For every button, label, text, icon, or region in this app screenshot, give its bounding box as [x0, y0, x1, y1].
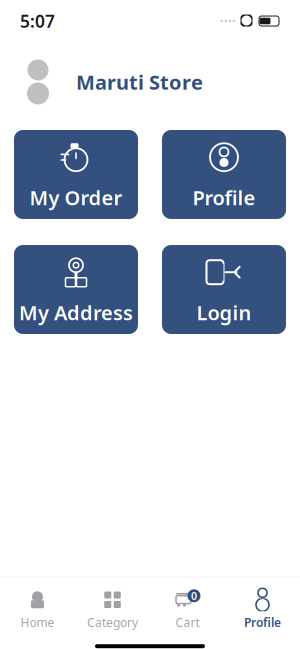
- staticText: Profile: [244, 614, 281, 630]
- staticText: My Address: [19, 299, 133, 326]
- staticText: Category: [87, 614, 138, 630]
- button[interactable]: Profile: [162, 130, 286, 219]
- button[interactable]: Home: [0, 584, 75, 636]
- staticText: Cart: [175, 614, 199, 630]
- button[interactable]: My Order: [14, 130, 138, 219]
- staticText: Home: [20, 614, 54, 630]
- button[interactable]: Category: [75, 584, 150, 636]
- staticText: Maruti Store: [76, 69, 203, 95]
- staticText: Login: [196, 299, 251, 326]
- button[interactable]: Login: [162, 245, 286, 334]
- button[interactable]: My Address: [14, 245, 138, 334]
- staticText: 0: [191, 589, 197, 603]
- staticText: 5:07: [20, 9, 55, 32]
- staticText: Profile: [192, 184, 255, 211]
- button[interactable]: Profile: [225, 584, 300, 636]
- staticText: My Order: [29, 184, 122, 211]
- button[interactable]: 0: [150, 584, 225, 636]
